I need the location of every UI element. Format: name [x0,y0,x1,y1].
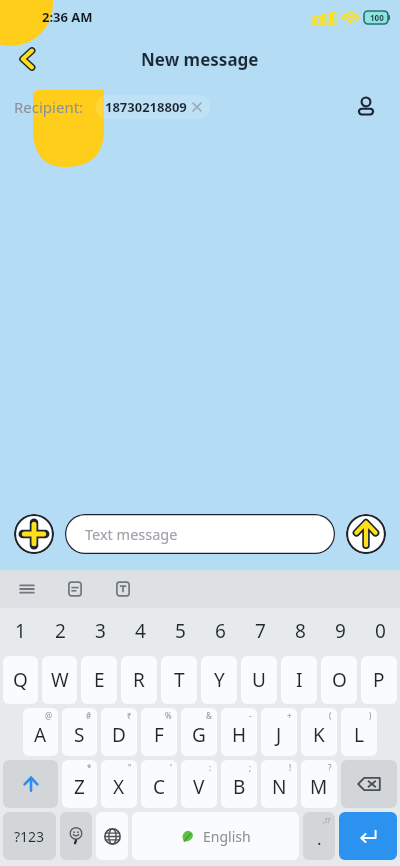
staticText: 9 [335,618,346,644]
button[interactable]: + [261,708,297,756]
button[interactable]: Text message [65,514,335,554]
staticText: & [206,710,212,721]
staticText: D [112,722,126,748]
staticText: ?123 [14,827,45,846]
button[interactable]: & [181,708,217,756]
button[interactable]: 6 [200,608,240,654]
staticText: Y [214,667,225,693]
staticText: % [165,710,172,721]
button[interactable]: 0 [360,608,400,654]
button[interactable]: Add attachment [14,514,54,554]
button[interactable]: Enter [339,812,397,860]
button[interactable]: Shift [3,760,58,808]
staticText: K [313,722,325,748]
button[interactable]: E [81,656,117,704]
staticText: ,!? [323,815,331,825]
button[interactable]: @ [23,708,58,756]
staticText: ; [249,762,252,773]
button[interactable]: Backspace [341,760,397,808]
staticText: T [174,667,185,693]
staticText: 100 [370,12,384,23]
button[interactable]: W [42,656,77,704]
staticText: English [203,827,251,846]
button[interactable]: - [221,708,257,756]
button[interactable]: Emoji [60,812,92,860]
button[interactable]: * [62,760,97,808]
button[interactable]: ₹ [101,708,137,756]
staticText: @ [45,710,53,721]
staticText: O [332,667,347,693]
staticText: R [133,667,145,693]
staticText: - [249,710,252,721]
button[interactable]: P [361,656,397,704]
button[interactable]: 4 [120,608,160,654]
button[interactable]: English [132,812,299,860]
staticText: X [113,774,125,800]
staticText: V [193,774,205,800]
button[interactable]: I [281,656,317,704]
button[interactable]: 7 [240,608,280,654]
staticText: L [354,722,364,748]
staticText: ? [328,762,332,773]
staticText: W [51,667,69,693]
button[interactable]: ' [141,760,177,808]
button[interactable]: Y [201,656,237,704]
button[interactable]: 8 [280,608,320,654]
button[interactable]: Change language [96,812,128,860]
button[interactable]: " [101,760,137,808]
staticText: : [209,762,212,773]
button[interactable]: 9 [320,608,360,654]
staticText: Text message [85,524,178,544]
button[interactable]: ( [301,708,337,756]
staticText: ₹ [127,710,132,721]
button[interactable]: Send [346,514,386,554]
button[interactable]: ; [221,760,257,808]
button[interactable]: # [62,708,97,756]
button[interactable]: ?123 [3,812,56,860]
staticText: ! [289,762,292,773]
button[interactable]: 18730218809 [96,95,210,119]
button[interactable]: O [321,656,357,704]
button[interactable]: : [181,760,217,808]
button[interactable]: 2 [40,608,80,654]
staticText: 3 [95,618,106,644]
staticText: 2 [55,618,66,644]
staticText: N [272,774,287,800]
button[interactable]: 5 [160,608,200,654]
staticText: A [34,722,47,748]
button[interactable]: ? [301,760,337,808]
staticText: H [232,722,247,748]
staticText: 4 [135,618,146,644]
staticText: 5 [175,618,186,644]
button[interactable]: U [241,656,277,704]
button[interactable]: T [161,656,197,704]
staticText: Z [74,774,85,800]
button[interactable]: ) [341,708,377,756]
button[interactable]: Clipboard [62,576,88,602]
button[interactable]: ! [261,760,297,808]
staticText: F [154,722,164,748]
staticText: Q [13,667,28,693]
button[interactable]: Q [3,656,38,704]
staticText: C [153,774,166,800]
button[interactable]: Text [110,576,136,602]
staticText: Recipient: [14,97,84,117]
staticText: I [296,667,303,693]
staticText: J [276,722,282,748]
button[interactable]: % [141,708,177,756]
button[interactable]: ,!? [303,812,335,860]
button[interactable]: 3 [80,608,120,654]
button[interactable]: Menu [14,576,40,602]
button[interactable]: Choose contact [346,87,386,127]
staticText: 8 [295,618,306,644]
staticText: 7 [255,618,266,644]
staticText: M [310,774,328,800]
staticText: + [287,710,292,721]
button[interactable]: Back [6,37,50,81]
staticText: 0 [375,618,386,644]
button[interactable]: 1 [0,608,40,654]
staticText: * [87,762,92,773]
staticText: B [233,774,246,800]
staticText: ' [170,762,172,773]
button[interactable]: R [121,656,157,704]
